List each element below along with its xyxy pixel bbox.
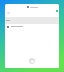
button[interactable]: Refresh — [29, 58, 35, 64]
button[interactable] — [5, 24, 59, 29]
button[interactable] — [27, 6, 38, 8]
button[interactable]: Status — [56, 10, 58, 12]
